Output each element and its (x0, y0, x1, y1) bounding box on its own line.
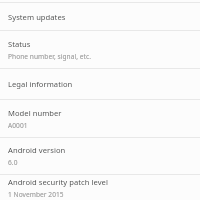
staticText: System updates (8, 12, 66, 22)
staticText: Android security patch level (8, 177, 108, 187)
staticText: 6.0 (8, 158, 18, 167)
staticText: A0001 (8, 121, 28, 130)
staticText: Legal information (8, 79, 73, 89)
button[interactable]: Model number (0, 100, 200, 137)
staticText: Phone number, signal, etc. (8, 52, 92, 61)
button[interactable]: Status (0, 31, 200, 68)
button[interactable]: Android security patch level (0, 175, 200, 200)
staticText: Status (8, 39, 31, 49)
button[interactable]: Android version (0, 138, 200, 174)
staticText: 1 November 2015 (8, 190, 64, 199)
staticText: Android version (8, 145, 66, 155)
button[interactable]: Legal information (0, 69, 200, 99)
staticText: Model number (8, 108, 62, 118)
button[interactable]: System updates (0, 3, 200, 30)
